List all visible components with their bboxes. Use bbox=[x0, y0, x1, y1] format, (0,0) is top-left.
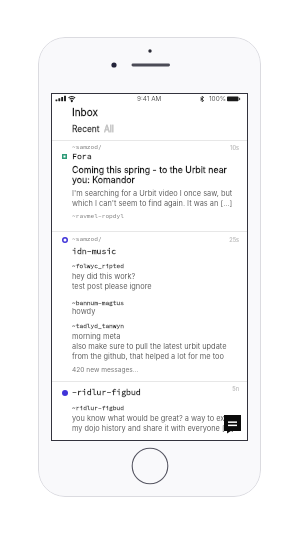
staticText: also make sure to pull the latest urbit … bbox=[72, 342, 238, 361]
staticText: Coming this spring - to the Urbit near y… bbox=[72, 164, 238, 185]
staticText: Fora bbox=[72, 151, 92, 161]
staticText: ~samzod/ bbox=[72, 143, 102, 151]
staticText: idn-music bbox=[72, 246, 117, 256]
button[interactable] bbox=[51, 140, 248, 231]
staticText: 25s bbox=[217, 237, 239, 244]
staticText: I'm searching for a Urbit video I once s… bbox=[72, 189, 238, 208]
staticText: you know what would be great? a way to e… bbox=[72, 414, 244, 433]
button[interactable]: All bbox=[104, 124, 114, 134]
staticText: 10s bbox=[217, 145, 239, 152]
staticText: 5n bbox=[217, 386, 239, 393]
staticText: 100% bbox=[209, 95, 226, 103]
staticText: 420 new messages... bbox=[72, 366, 139, 374]
staticText: ~tadlyd_tanwyn bbox=[72, 322, 124, 330]
staticText: ~samzod/ bbox=[72, 235, 102, 243]
button[interactable]: Recent bbox=[72, 124, 100, 134]
staticText: -ridlur-figbud bbox=[72, 387, 141, 397]
staticText: howdy bbox=[72, 307, 96, 316]
staticText: test post please ignore bbox=[72, 282, 152, 291]
button[interactable] bbox=[51, 382, 248, 441]
staticText: 9:41 AM bbox=[137, 95, 162, 103]
staticText: morning meta bbox=[72, 332, 121, 341]
staticText: ~bannum-magtus bbox=[72, 299, 124, 307]
staticText: ~folwyc_ripted bbox=[72, 262, 124, 270]
staticText: ~ridlur-figbud bbox=[72, 404, 124, 412]
button[interactable] bbox=[51, 232, 248, 381]
staticText: hey did this work? bbox=[72, 272, 136, 281]
button[interactable]: Inbox bbox=[72, 106, 98, 118]
staticText: ~ravmel-ropdyl bbox=[72, 212, 124, 220]
button[interactable]: New message bbox=[224, 415, 241, 431]
